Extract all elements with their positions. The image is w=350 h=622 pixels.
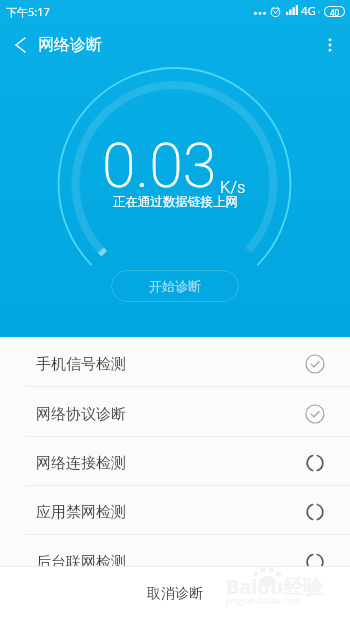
button[interactable]: Back	[0, 22, 40, 67]
staticText: 开始诊断	[149, 278, 201, 294]
staticText: 网络协议诊断	[36, 405, 126, 424]
staticText: jingyan.baidu.com	[226, 595, 300, 607]
staticText: 网络诊断	[38, 35, 102, 55]
staticText: 手机信号检测	[36, 355, 126, 374]
button[interactable]: 手机信号检测	[0, 338, 350, 387]
button[interactable]: 应用禁网检测	[0, 486, 350, 535]
staticText: 后台联网检测	[36, 553, 126, 566]
staticText: 正在通过数据链接上网	[113, 194, 238, 210]
button[interactable]: 网络协议诊断	[0, 388, 350, 437]
staticText: K/s	[220, 178, 246, 197]
button[interactable]: Baidu经验	[0, 566, 350, 622]
button[interactable]: 后台联网检测	[0, 536, 350, 566]
staticText: 4G	[301, 3, 316, 19]
staticText: 取消诊断	[147, 585, 203, 603]
staticText: 40	[330, 7, 340, 16]
button[interactable]: 网络连接检测	[0, 437, 350, 486]
staticText: 下午5:17	[6, 4, 50, 19]
button[interactable]: 开始诊断	[111, 270, 239, 302]
staticText: Baidu经验	[226, 573, 323, 600]
staticText: 0.03	[102, 130, 217, 201]
button[interactable]: More options	[310, 22, 350, 67]
staticText: 网络连接检测	[36, 454, 126, 473]
staticText: 应用禁网检测	[36, 503, 126, 522]
